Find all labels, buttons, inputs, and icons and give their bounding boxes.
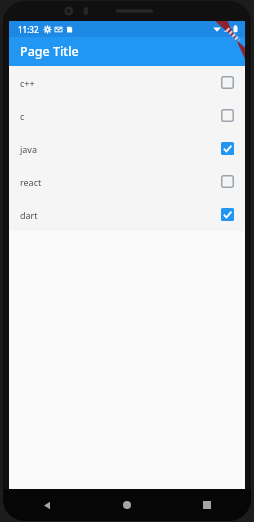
staticText: c++ [20,77,35,89]
button[interactable]: react unchecked [221,175,234,188]
staticText: react [20,176,42,188]
staticText: c [20,110,25,122]
button[interactable]: java [9,132,245,165]
button[interactable]: c++ [9,66,245,99]
button[interactable]: java checked [221,142,234,155]
staticText: Page Title [20,43,79,60]
button[interactable]: dart checked [221,208,234,221]
button[interactable]: Back [37,495,57,515]
staticText: java [20,143,37,155]
button[interactable]: react [9,165,245,198]
button[interactable]: c [9,99,245,132]
button[interactable]: dart [9,198,245,231]
staticText: 11:32 [18,24,39,35]
button[interactable]: Home [117,495,137,515]
staticText: dart [20,209,38,221]
button[interactable]: c unchecked [221,109,234,122]
button[interactable]: Recent apps [197,495,217,515]
button[interactable]: c++ unchecked [221,76,234,89]
